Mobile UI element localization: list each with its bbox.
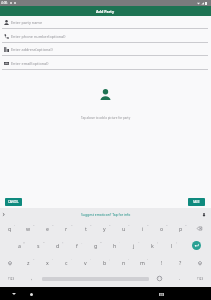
button[interactable]: ?123 bbox=[189, 270, 211, 287]
button[interactable]: d bbox=[48, 237, 67, 254]
staticText: j bbox=[133, 242, 135, 249]
button[interactable]: m bbox=[133, 254, 152, 271]
button[interactable]: Switch keyboard bbox=[156, 289, 166, 299]
staticText: $ bbox=[62, 240, 64, 243]
button[interactable]: n bbox=[114, 254, 133, 271]
staticText: v bbox=[84, 259, 87, 266]
staticText: " bbox=[52, 257, 53, 260]
staticText: 1 bbox=[14, 223, 16, 226]
staticText: CANCEL bbox=[8, 200, 19, 204]
staticText: Enter email(optional) bbox=[11, 61, 49, 66]
staticText: 2 bbox=[33, 223, 35, 226]
button[interactable]: i bbox=[133, 220, 152, 237]
staticText: g bbox=[94, 242, 98, 249]
button[interactable]: CANCEL bbox=[5, 198, 22, 206]
button[interactable]: Space bbox=[42, 270, 149, 287]
button[interactable]: c bbox=[57, 254, 76, 271]
button[interactable]: g bbox=[86, 237, 105, 254]
staticText: SAVE bbox=[193, 200, 200, 204]
button[interactable]: e bbox=[38, 220, 57, 237]
staticText: Suggest emoticon? Tap for info bbox=[81, 212, 131, 217]
staticText: c bbox=[65, 259, 68, 266]
button[interactable]: Enter email(optional) bbox=[0, 56, 211, 70]
button[interactable]: b bbox=[95, 254, 114, 271]
button[interactable]: Enter phone number(optional) bbox=[0, 29, 211, 43]
button[interactable]: Enter address(optional) bbox=[0, 42, 211, 56]
staticText: ' bbox=[71, 257, 72, 260]
staticText: : bbox=[90, 257, 91, 260]
staticText: r bbox=[65, 225, 68, 232]
staticText: ! bbox=[128, 257, 129, 260]
button[interactable]: Hide keyboard bbox=[9, 289, 19, 299]
button[interactable]: Add picture for party bbox=[95, 84, 116, 105]
staticText: Enter phone number(optional) bbox=[11, 34, 66, 39]
staticText: - bbox=[119, 240, 120, 243]
staticText: ( bbox=[157, 240, 158, 243]
staticText: 8 bbox=[147, 223, 149, 226]
staticText: z bbox=[27, 259, 30, 266]
staticText: b bbox=[103, 259, 107, 266]
staticText: w bbox=[26, 225, 31, 232]
staticText: 9 bbox=[166, 223, 168, 226]
staticText: p bbox=[179, 225, 183, 232]
staticText: y bbox=[103, 225, 106, 232]
button[interactable]: h bbox=[105, 237, 124, 254]
button[interactable]: ? bbox=[171, 254, 190, 271]
button[interactable]: t bbox=[76, 220, 95, 237]
button[interactable]: x bbox=[38, 254, 57, 271]
staticText: 6 bbox=[109, 223, 111, 226]
button[interactable]: Shift bbox=[190, 254, 209, 271]
staticText: l bbox=[171, 242, 173, 249]
staticText: h bbox=[113, 242, 117, 249]
button[interactable]: ?123 bbox=[0, 270, 22, 287]
button[interactable]: Expand suggestions bbox=[0, 211, 7, 218]
button[interactable]: Emoji bbox=[149, 270, 170, 287]
staticText: a bbox=[18, 242, 21, 249]
staticText: * bbox=[33, 257, 35, 260]
staticText: Enter address(optional) bbox=[11, 47, 53, 52]
staticText: 3 bbox=[52, 223, 54, 226]
button[interactable]: SAVE bbox=[188, 198, 205, 206]
button[interactable]: f bbox=[67, 237, 86, 254]
staticText: ?123 bbox=[8, 277, 15, 281]
button[interactable]: s bbox=[29, 237, 48, 254]
button[interactable]: Backspace bbox=[190, 220, 209, 237]
button[interactable]: l bbox=[162, 237, 181, 254]
staticText: ) bbox=[176, 240, 177, 243]
staticText: # bbox=[43, 240, 45, 243]
button[interactable]: z bbox=[19, 254, 38, 271]
staticText: q bbox=[8, 225, 12, 232]
button[interactable]: Shift bbox=[0, 254, 19, 271]
button[interactable]: More options bbox=[200, 211, 207, 218]
staticText: Add Party bbox=[96, 9, 115, 14]
staticText: t bbox=[85, 225, 87, 232]
button[interactable]: ! bbox=[152, 254, 171, 271]
button[interactable]: k bbox=[143, 237, 162, 254]
button[interactable]: v bbox=[76, 254, 95, 271]
staticText: Tap above to add a picture for party bbox=[81, 116, 131, 120]
button[interactable]: p bbox=[171, 220, 190, 237]
button[interactable]: Enter party name bbox=[0, 15, 211, 29]
button[interactable]: r bbox=[57, 220, 76, 237]
button[interactable]: y bbox=[95, 220, 114, 237]
staticText: & bbox=[100, 240, 102, 243]
button[interactable]: Home bbox=[26, 289, 36, 299]
staticText: @ bbox=[23, 240, 26, 243]
staticText: 5 bbox=[90, 223, 92, 226]
button[interactable]: Enter bbox=[181, 237, 211, 254]
button[interactable]: j bbox=[124, 237, 143, 254]
button[interactable]: o bbox=[152, 220, 171, 237]
staticText: i bbox=[142, 225, 144, 232]
staticText: m bbox=[140, 259, 145, 266]
staticText: ? bbox=[147, 257, 149, 260]
button[interactable]: a bbox=[10, 237, 29, 254]
staticText: 7 bbox=[128, 223, 130, 226]
button[interactable]: u bbox=[114, 220, 133, 237]
button[interactable]: w bbox=[19, 220, 38, 237]
button[interactable]: q bbox=[0, 220, 19, 237]
staticText: x bbox=[46, 259, 49, 266]
